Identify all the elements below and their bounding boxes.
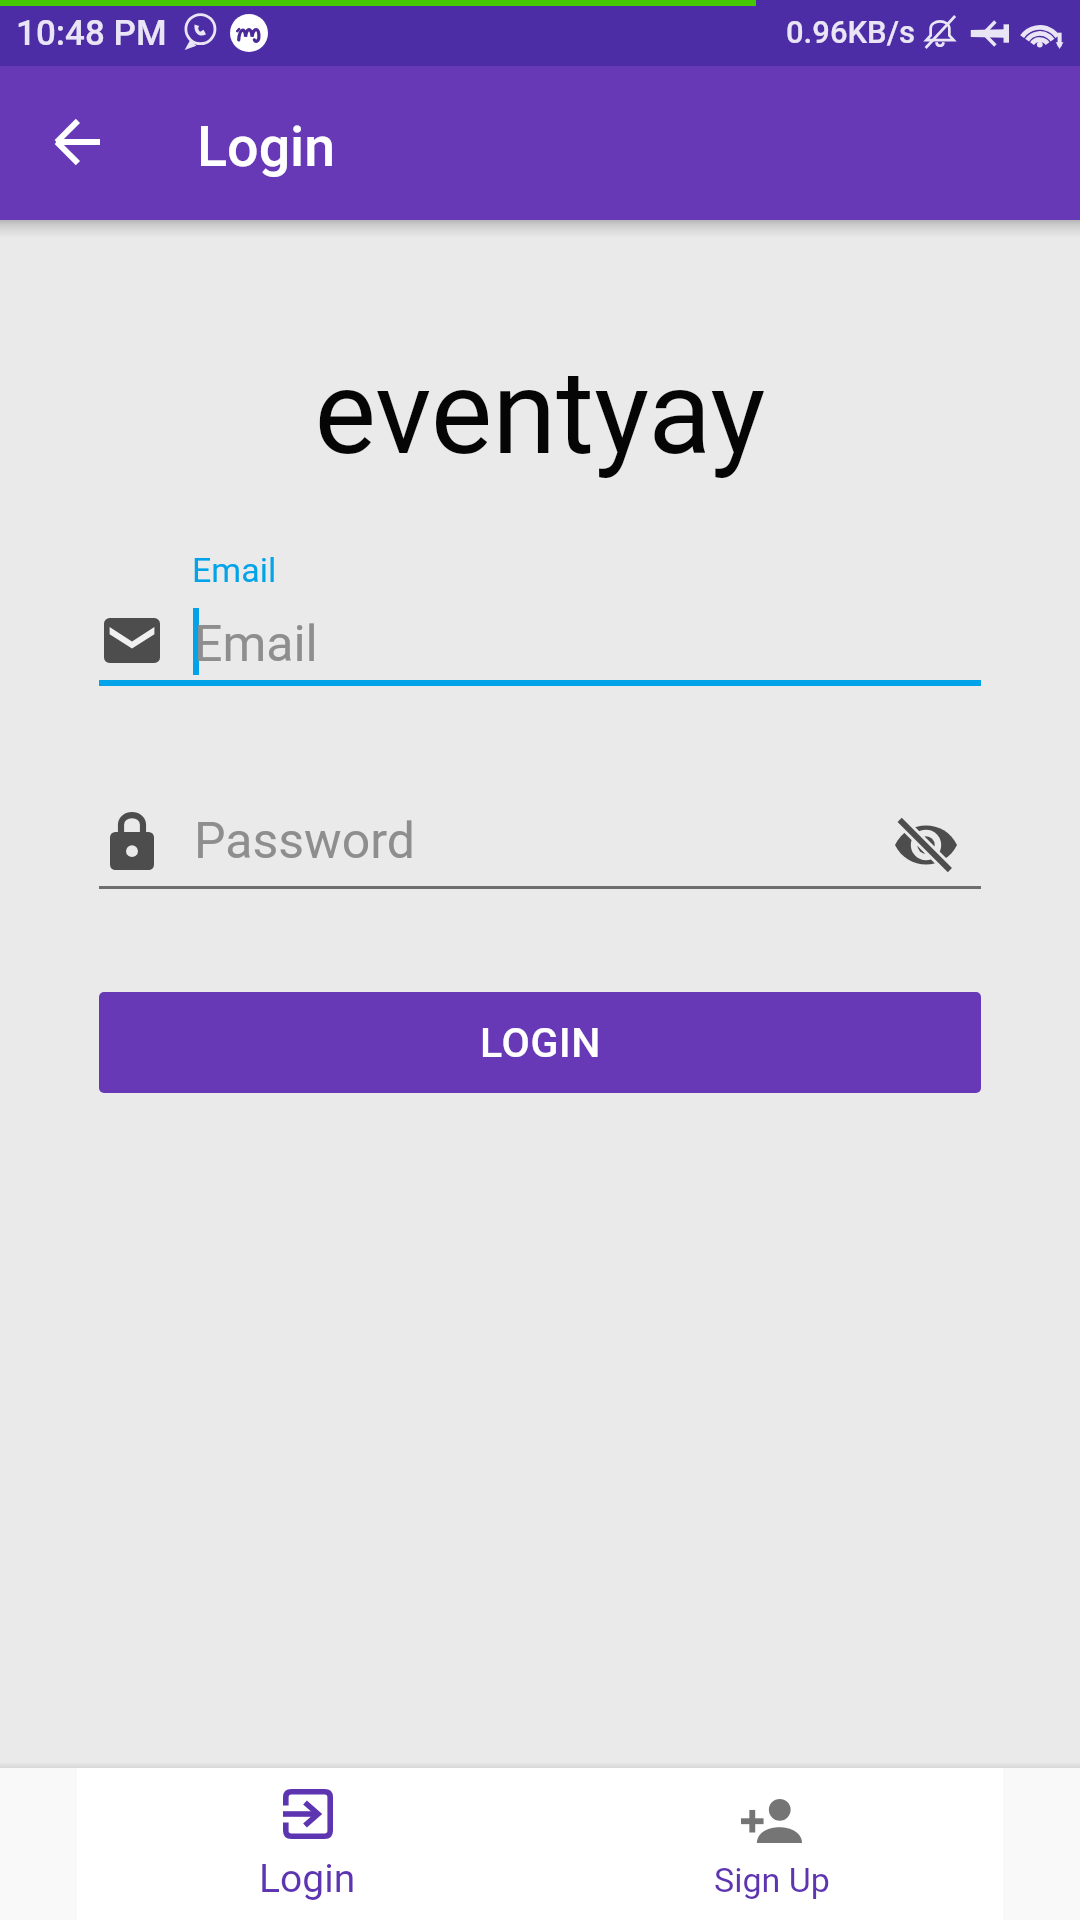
button[interactable]: Show password	[880, 805, 972, 885]
staticText: 10:48 PM	[16, 13, 167, 54]
button[interactable]: Email field	[99, 545, 981, 686]
staticText: Password	[194, 812, 415, 871]
button[interactable]: Back	[22, 87, 132, 197]
staticText: Login	[197, 115, 336, 180]
button[interactable]: Login	[77, 1768, 540, 1920]
staticText: LOGIN	[480, 1019, 601, 1067]
staticText: Sign Up	[714, 1860, 830, 1900]
button[interactable]: Sign Up	[540, 1768, 1003, 1920]
button[interactable]: Password field	[99, 800, 869, 889]
staticText: 0.96KB/s	[786, 14, 915, 50]
staticText: Login	[259, 1856, 356, 1902]
button[interactable]: LOGIN	[99, 992, 981, 1093]
staticText: Email	[194, 615, 318, 674]
staticText: Email	[192, 550, 277, 590]
staticText: eventyay	[0, 345, 1080, 481]
